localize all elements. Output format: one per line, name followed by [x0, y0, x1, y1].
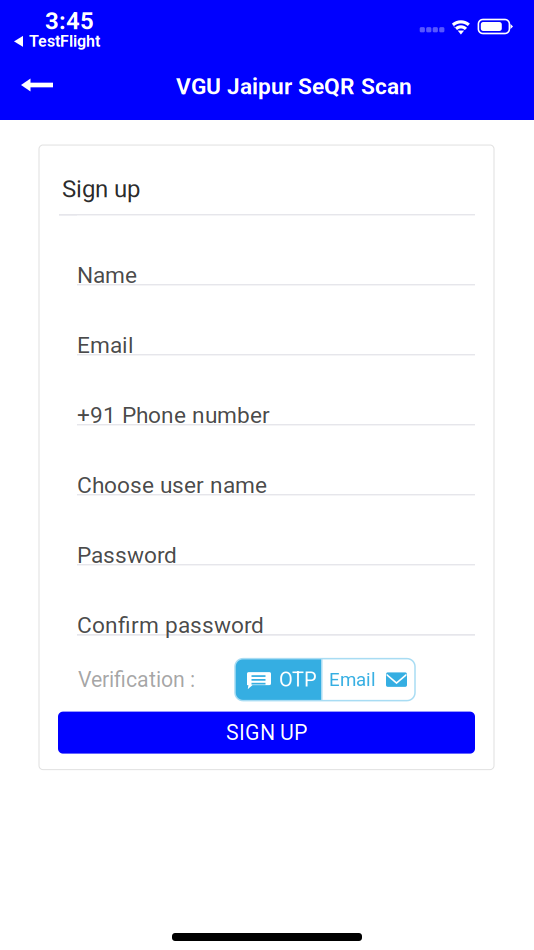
- staticText: Email: [77, 332, 134, 359]
- button[interactable]: Email: [321, 659, 415, 701]
- staticText: Email: [329, 669, 376, 691]
- staticText: VGU Jaipur SeQR Scan: [176, 73, 412, 100]
- staticText: 3:45: [45, 7, 94, 35]
- button[interactable]: SIGN UP: [58, 712, 475, 754]
- staticText: Sign up: [62, 175, 140, 203]
- staticText: Password: [77, 542, 177, 569]
- staticText: Choose user name: [77, 472, 267, 499]
- staticText: SIGN UP: [226, 720, 307, 745]
- staticText: +91 Phone number: [77, 402, 270, 429]
- staticText: OTP: [279, 668, 317, 691]
- staticText: Name: [77, 262, 137, 289]
- staticText: Confirm password: [77, 612, 264, 639]
- staticText: Verification :: [78, 667, 195, 692]
- button[interactable]: Back: [0, 64, 71, 111]
- staticText: TestFlight: [29, 32, 100, 51]
- button[interactable]: OTP: [235, 659, 321, 701]
